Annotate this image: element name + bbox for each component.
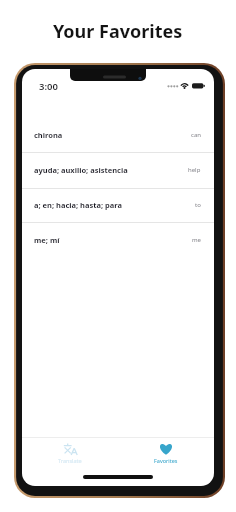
button[interactable]: me; mí <box>22 222 214 257</box>
staticText: can <box>191 131 201 139</box>
button[interactable]: Translate <box>22 438 118 466</box>
staticText: me <box>192 236 201 244</box>
staticText: me; mí <box>34 235 60 245</box>
staticText: ayuda; auxilio; asistencia <box>34 165 128 175</box>
staticText: a; en; hacia; hasta; para <box>34 200 122 210</box>
staticText: to <box>195 201 201 209</box>
button[interactable]: chirona <box>22 118 214 152</box>
button[interactable]: Favorites <box>118 438 214 466</box>
staticText: Translate <box>58 457 82 464</box>
staticText: chirona <box>34 130 63 140</box>
staticText: Your Favorites <box>53 19 183 44</box>
button[interactable]: ayuda; auxilio; asistencia <box>22 152 214 187</box>
staticText: Favorites <box>154 457 178 464</box>
staticText: 3:00 <box>39 80 58 91</box>
button[interactable]: a; en; hacia; hasta; para <box>22 188 214 222</box>
staticText: help <box>188 166 201 174</box>
